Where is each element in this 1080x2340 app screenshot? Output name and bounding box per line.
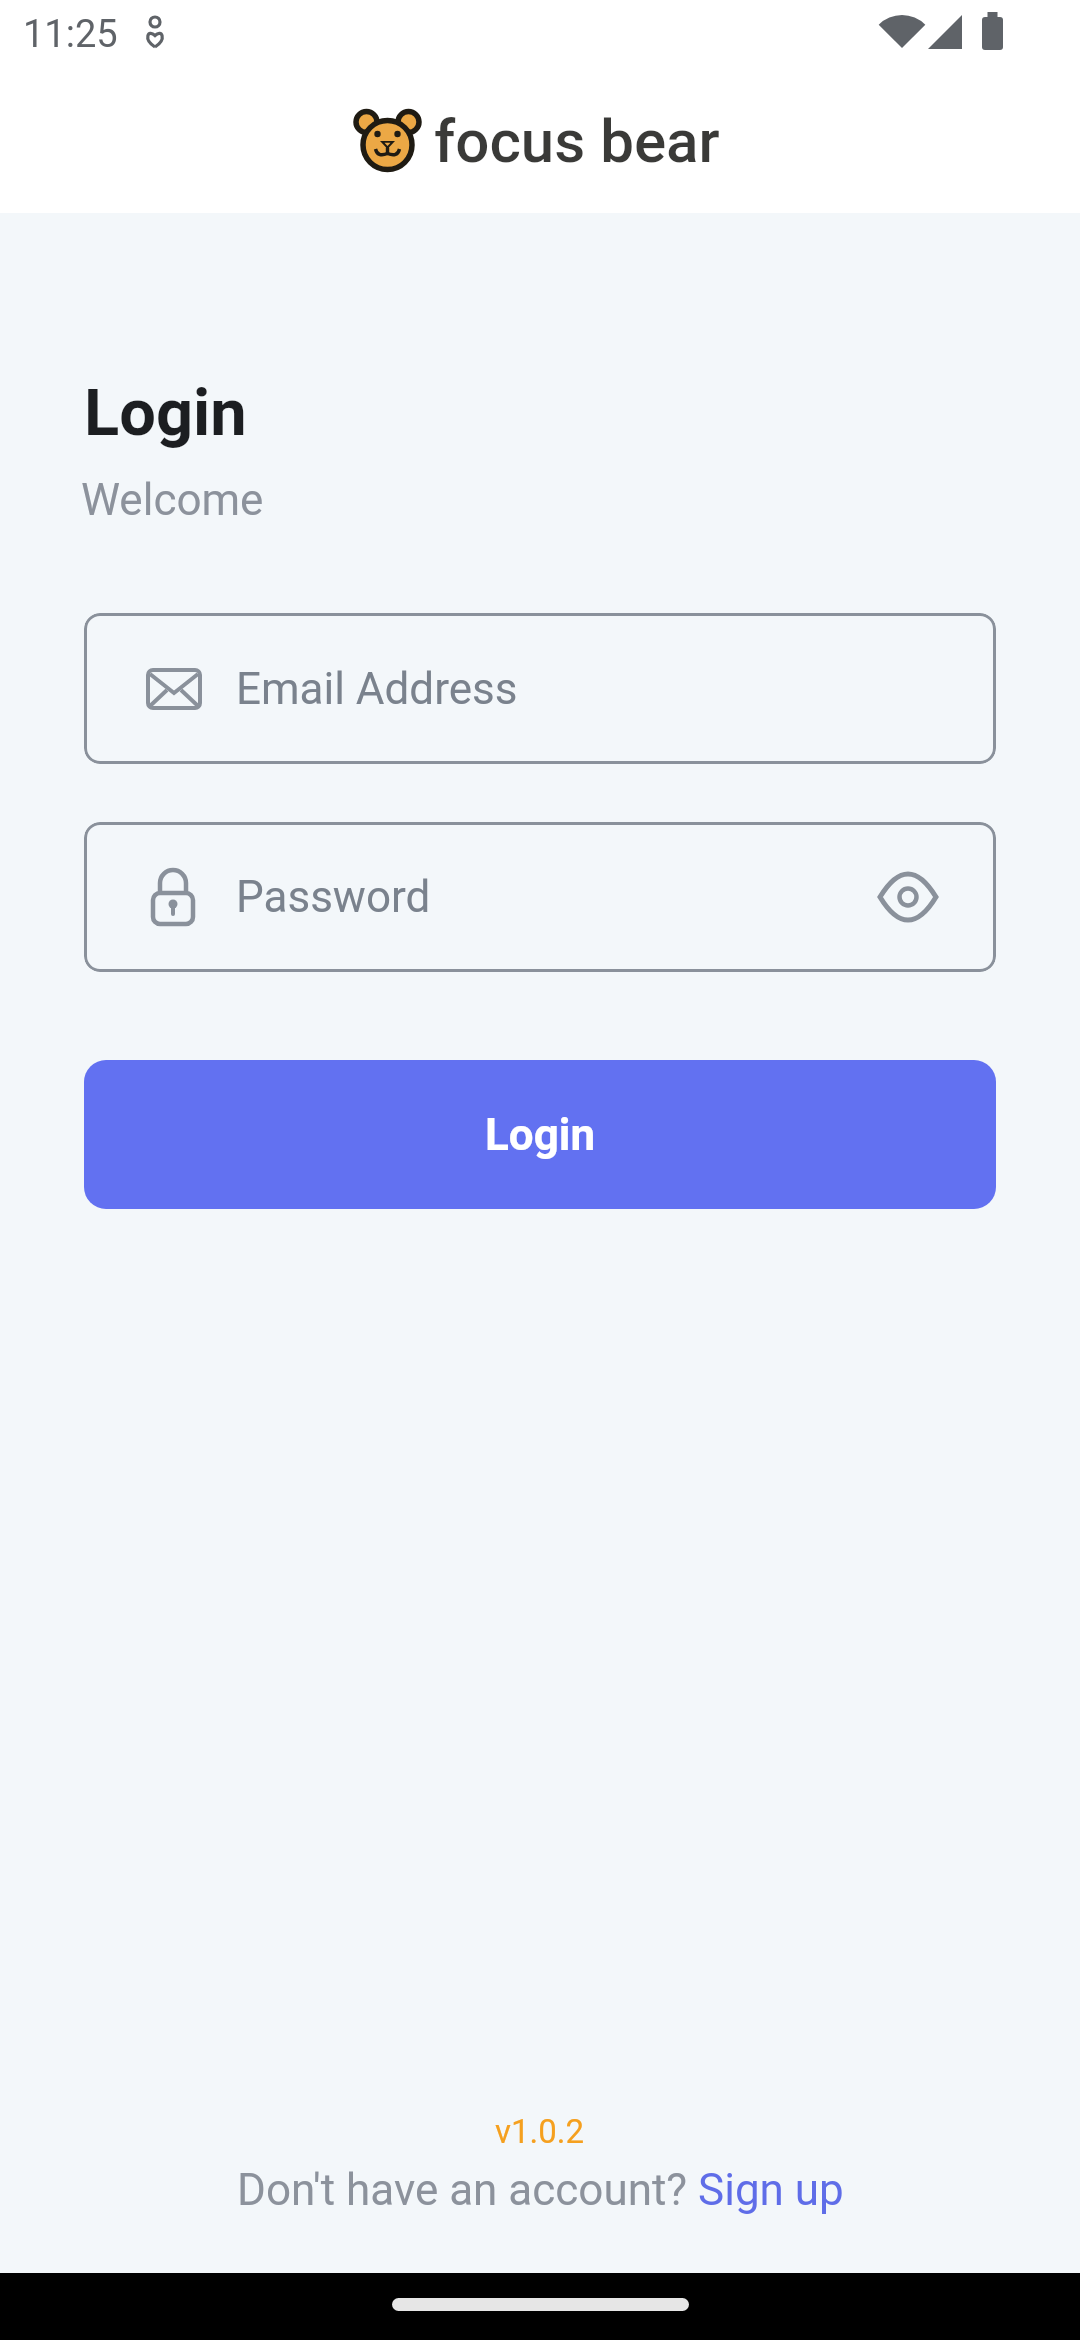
staticText: v1.0.2 bbox=[495, 2112, 585, 2151]
staticText: Login bbox=[84, 375, 247, 451]
staticText: Login bbox=[485, 1109, 596, 1161]
button[interactable]: Login bbox=[84, 1060, 996, 1209]
button[interactable]: Don't have an account? Sign up bbox=[237, 2164, 844, 2216]
button[interactable]: Password bbox=[84, 822, 996, 972]
staticText: Password bbox=[236, 871, 431, 923]
staticText: 11:25 bbox=[23, 12, 118, 57]
button[interactable]: Email Address bbox=[84, 613, 996, 764]
staticText: focus bear bbox=[434, 106, 720, 176]
staticText: Welcome bbox=[81, 474, 264, 526]
staticText: Email Address bbox=[236, 663, 518, 715]
button[interactable] bbox=[878, 875, 938, 919]
